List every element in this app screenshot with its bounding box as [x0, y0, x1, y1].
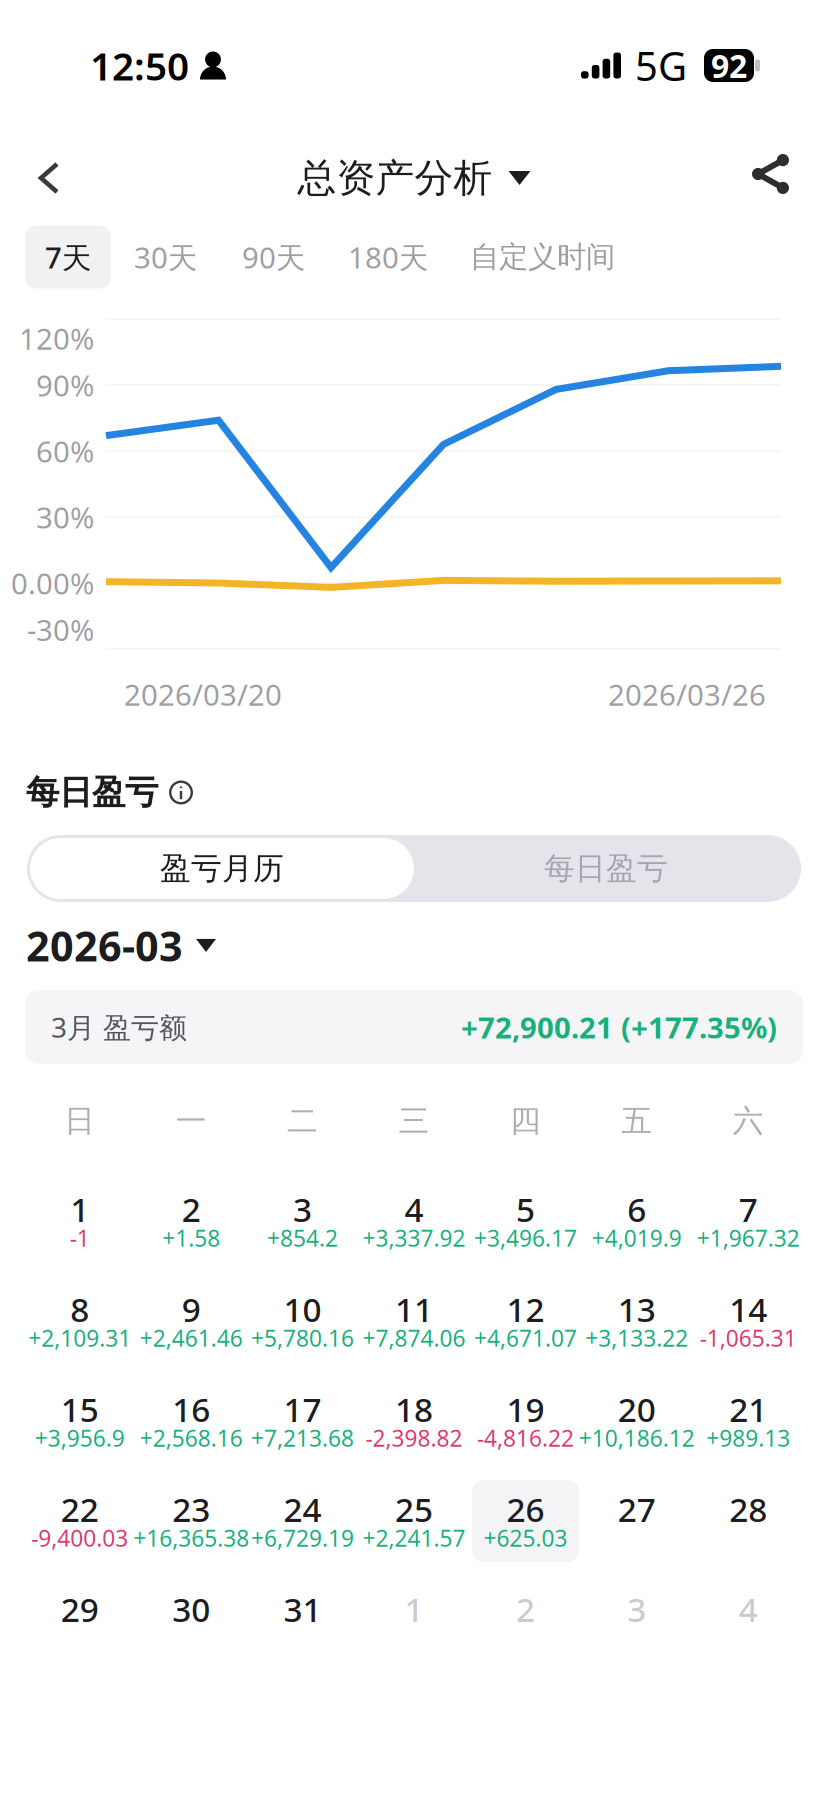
- button[interactable]: 3: [249, 1180, 356, 1262]
- button[interactable]: 23: [138, 1480, 245, 1562]
- button[interactable]: 90天: [220, 225, 327, 288]
- button[interactable]: 9: [138, 1280, 245, 1362]
- button[interactable]: 180天: [327, 225, 449, 288]
- button[interactable]: 21: [695, 1380, 802, 1462]
- staticText: 四: [510, 1102, 541, 1140]
- button[interactable]: 11: [360, 1280, 467, 1362]
- staticText: +16,365.38: [133, 1523, 249, 1553]
- staticText: 60%: [36, 431, 94, 470]
- staticText: 180天: [348, 237, 428, 276]
- staticText: 盈亏月历: [160, 850, 284, 887]
- staticText: 90%: [36, 365, 94, 404]
- staticText: 4: [404, 1187, 423, 1231]
- staticText: -30%: [27, 610, 94, 649]
- staticText: 6: [627, 1187, 646, 1231]
- button[interactable]: 19: [472, 1380, 579, 1462]
- staticText: 19: [506, 1387, 544, 1431]
- button[interactable]: 22: [26, 1480, 133, 1562]
- button[interactable]: 31: [249, 1580, 356, 1662]
- staticText: 15: [61, 1387, 99, 1431]
- staticText: +2,461.46: [140, 1323, 243, 1353]
- staticText: 120%: [19, 319, 94, 358]
- staticText: +2,568.16: [140, 1423, 243, 1453]
- staticText: 9: [182, 1287, 201, 1331]
- staticText: 90天: [242, 237, 305, 276]
- staticText: -4,816.22: [477, 1423, 574, 1453]
- button[interactable]: 1: [360, 1580, 467, 1662]
- staticText: +72,900.21 (+177.35%): [461, 1007, 777, 1046]
- button[interactable]: 16: [138, 1380, 245, 1462]
- button[interactable]: 13: [583, 1280, 690, 1362]
- staticText: 12: [506, 1287, 544, 1331]
- button[interactable]: 2: [138, 1180, 245, 1262]
- button[interactable]: Share: [728, 136, 812, 220]
- staticText: 18: [395, 1387, 433, 1431]
- button[interactable]: 2: [472, 1580, 579, 1662]
- staticText: 23: [172, 1487, 210, 1531]
- button[interactable]: 27: [583, 1480, 690, 1562]
- button[interactable]: Back: [16, 134, 98, 222]
- staticText: 2026/03/20: [124, 675, 282, 714]
- staticText: 2: [182, 1187, 201, 1231]
- staticText: +7,213.68: [251, 1423, 354, 1453]
- button[interactable]: 4: [695, 1580, 802, 1662]
- staticText: 0.00%: [11, 563, 94, 602]
- button[interactable]: 2026-03: [26, 910, 216, 981]
- button[interactable]: 自定义时间: [449, 227, 636, 287]
- staticText: 2026/03/26: [608, 675, 766, 714]
- staticText: 总资产分析: [297, 154, 492, 202]
- staticText: +854.2: [267, 1223, 338, 1253]
- staticText: -9,400.03: [31, 1523, 128, 1553]
- button[interactable]: 5: [472, 1180, 579, 1262]
- staticText: 27: [618, 1487, 656, 1531]
- staticText: 21: [729, 1387, 767, 1431]
- button[interactable]: 28: [695, 1480, 802, 1562]
- staticText: 30%: [36, 497, 94, 536]
- staticText: +2,109.31: [28, 1323, 131, 1353]
- button[interactable]: 30: [138, 1580, 245, 1662]
- staticText: 16: [172, 1387, 210, 1431]
- button[interactable]: 29: [26, 1580, 133, 1662]
- button[interactable]: 24: [249, 1480, 356, 1562]
- staticText: 二: [287, 1102, 318, 1140]
- button[interactable]: 8: [26, 1280, 133, 1362]
- button[interactable]: 7天: [25, 225, 111, 288]
- button[interactable]: 17: [249, 1380, 356, 1462]
- button[interactable]: 14: [695, 1280, 802, 1362]
- staticText: 10: [284, 1287, 322, 1331]
- button[interactable]: 6: [583, 1180, 690, 1262]
- button[interactable]: 12: [472, 1280, 579, 1362]
- staticText: 26: [506, 1487, 544, 1531]
- button[interactable]: 18: [360, 1380, 467, 1462]
- button[interactable]: 25: [360, 1480, 467, 1562]
- button[interactable]: 15: [26, 1380, 133, 1462]
- staticText: 30: [172, 1587, 210, 1631]
- button[interactable]: 30天: [111, 225, 220, 288]
- button[interactable]: 7: [695, 1180, 802, 1262]
- button[interactable]: 总资产分析: [297, 142, 530, 214]
- staticText: 14: [729, 1287, 767, 1331]
- button[interactable]: 盈亏月历: [30, 838, 414, 899]
- button[interactable]: 10: [249, 1280, 356, 1362]
- staticText: 22: [61, 1487, 99, 1531]
- staticText: 28: [729, 1487, 767, 1531]
- button[interactable]: 1: [26, 1180, 133, 1262]
- staticText: +10,186.12: [579, 1423, 695, 1453]
- button[interactable]: 4: [360, 1180, 467, 1262]
- button[interactable]: 3: [583, 1580, 690, 1662]
- button[interactable]: 26: [472, 1480, 579, 1562]
- staticText: 3: [293, 1187, 312, 1231]
- staticText: 3月 盈亏额: [51, 1008, 187, 1046]
- staticText: 29: [61, 1587, 99, 1631]
- staticText: 自定义时间: [470, 239, 615, 275]
- button[interactable]: 20: [583, 1380, 690, 1462]
- button[interactable]: 每日盈亏: [414, 838, 798, 899]
- staticText: -2,398.82: [365, 1423, 462, 1453]
